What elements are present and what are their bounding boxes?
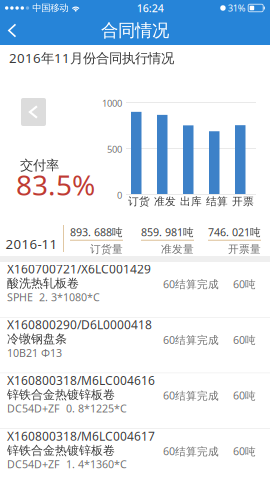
button[interactable]: X160800318/M6LC004617 <box>0 429 270 479</box>
staticText: 准发 <box>154 195 176 208</box>
staticText: 锌铁合金热镀锌板卷 <box>7 387 115 402</box>
staticText: X160800318/M6LC004616 <box>7 372 155 388</box>
staticText: 订货 <box>128 195 150 208</box>
staticText: 60吨 <box>233 388 256 403</box>
button[interactable]: Back <box>0 16 30 44</box>
staticText: SPHE 2. 3*1080*C <box>7 290 100 304</box>
staticText: 结算 <box>206 195 228 208</box>
staticText: 酸洗热轧板卷 <box>7 276 79 291</box>
staticText: 冷镦钢盘条 <box>7 332 67 346</box>
staticText: 锌铁合金热镀锌板卷 <box>7 443 115 458</box>
button[interactable]: Previous period <box>21 98 46 126</box>
staticText: 0 <box>117 189 122 201</box>
staticText: 60结算完成 <box>163 388 219 403</box>
staticText: 10B21 Φ13 <box>7 346 62 360</box>
staticText: 60结算完成 <box>163 444 219 458</box>
staticText: 出库 <box>180 195 202 208</box>
staticText: DC54D+ZF 1. 4*1360*C <box>7 457 127 471</box>
staticText: 746. 021吨 <box>208 225 261 239</box>
staticText: 893. 688吨 <box>70 225 123 239</box>
staticText: 60结算完成 <box>163 333 219 347</box>
button[interactable]: X160700721/X6LC001429 <box>0 262 270 317</box>
staticText: 2016-11 <box>5 235 57 253</box>
staticText: 交付率 <box>20 157 59 173</box>
staticText: 准发量 <box>161 243 194 256</box>
staticText: X160700721/X6LC001429 <box>7 261 151 277</box>
button[interactable]: X160800318/M6LC004616 <box>0 373 270 428</box>
staticText: 60吨 <box>233 277 256 291</box>
staticText: 500 <box>107 143 122 155</box>
staticText: 开票量 <box>228 243 261 256</box>
staticText: 合同情况 <box>101 20 169 41</box>
staticText: 中国移动 <box>32 2 68 14</box>
staticText: 开票 <box>232 195 254 208</box>
staticText: X160800318/M6LC004617 <box>7 428 155 444</box>
staticText: 60吨 <box>233 444 256 458</box>
staticText: DC54D+ZF 0. 8*1225*C <box>7 401 127 416</box>
staticText: 859. 981吨 <box>141 225 194 239</box>
staticText: 2016年11月份合同执行情况 <box>9 49 174 67</box>
staticText: 31% <box>228 2 246 14</box>
staticText: 60吨 <box>233 333 256 347</box>
staticText: 83.5% <box>16 166 95 203</box>
staticText: 1000 <box>102 97 122 109</box>
button[interactable]: X160800290/D6L0000418 <box>0 318 270 373</box>
staticText: 16:24 <box>137 1 164 15</box>
staticText: 60结算完成 <box>163 277 219 291</box>
staticText: X160800290/D6L0000418 <box>7 317 152 333</box>
staticText: 订货量 <box>90 243 123 256</box>
